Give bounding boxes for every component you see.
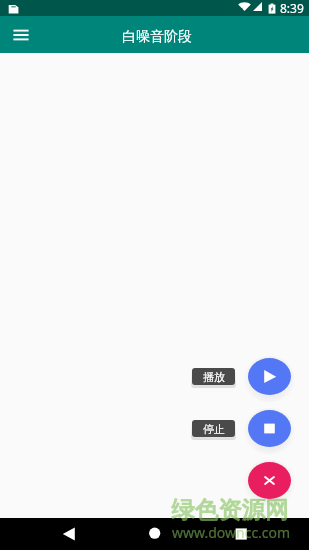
staticText: 绿色资源网: [171, 495, 289, 525]
button[interactable]: 播放: [192, 368, 235, 385]
button[interactable]: Open navigation menu: [7, 21, 35, 49]
staticText: www.downcc.com: [172, 523, 291, 542]
button[interactable]: Close menu: [248, 462, 291, 499]
button[interactable]: 停止: [192, 420, 235, 437]
button[interactable]: Play: [248, 358, 291, 395]
staticText: 停止: [203, 422, 225, 436]
staticText: 播放: [203, 370, 225, 384]
staticText: 8:39: [280, 0, 304, 16]
staticText: 白噪音阶段: [122, 28, 192, 46]
button[interactable]: Stop: [248, 410, 291, 447]
